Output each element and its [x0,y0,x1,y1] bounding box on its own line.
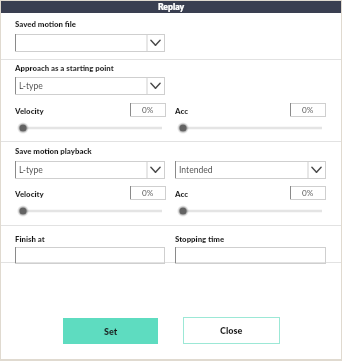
staticText: Set [104,326,118,337]
button[interactable]: L-type [15,161,165,179]
button[interactable] [15,205,162,217]
staticText: Saved motion file [15,19,76,28]
button[interactable] [175,122,322,134]
button[interactable]: 0% [130,103,166,117]
button[interactable]: 0% [130,186,166,200]
staticText: Acc [175,189,188,198]
button[interactable]: Close [183,317,280,344]
staticText: Close [220,325,243,336]
button[interactable] [15,122,162,134]
staticText: Acc [175,106,188,115]
staticText: 0% [302,188,314,198]
button[interactable]: 0% [290,186,326,200]
staticText: L-type [19,81,43,91]
staticText: Approach as a starting point [15,63,114,72]
staticText: Intended [179,165,213,175]
button[interactable]: Set [63,318,158,344]
button[interactable]: 0% [290,103,326,117]
staticText: 0% [302,105,314,115]
staticText: Velocity [15,189,44,198]
staticText: L-type [19,165,43,175]
button[interactable]: L-type [15,77,165,95]
button[interactable] [15,247,165,264]
staticText: Stopping time [175,234,225,243]
staticText: 0% [142,105,154,115]
staticText: Finish at [15,234,45,243]
button[interactable]: Intended [175,161,326,179]
staticText: Save motion playback [15,146,92,155]
staticText: Velocity [15,106,44,115]
staticText: Replay [158,2,185,12]
button[interactable] [15,34,165,52]
button[interactable] [175,205,322,217]
staticText: 0% [142,188,154,198]
button[interactable] [175,247,326,264]
